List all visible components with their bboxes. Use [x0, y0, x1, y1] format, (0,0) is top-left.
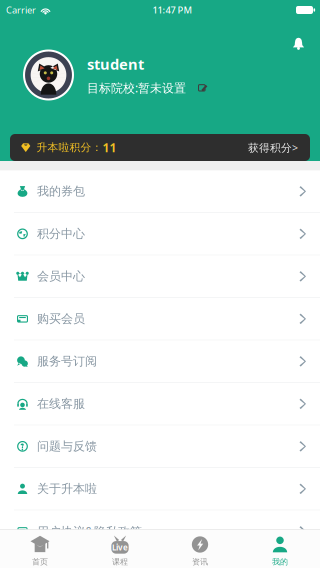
- button[interactable]: 我的: [240, 530, 320, 568]
- staticText: 升本啦积分：: [36, 141, 102, 154]
- button[interactable]: 头像: [23, 49, 74, 100]
- staticText: Live: [112, 542, 128, 553]
- staticText: Carrier: [6, 4, 36, 16]
- button[interactable]: Live: [80, 530, 160, 568]
- staticText: 11: [102, 139, 116, 155]
- button[interactable]: 关于升本啦: [0, 468, 320, 511]
- button[interactable]: 编辑目标院校: [186, 81, 207, 94]
- button[interactable]: 我的券包: [0, 171, 320, 213]
- button[interactable]: 首页: [0, 530, 80, 568]
- button[interactable]: 购买会员: [0, 298, 320, 341]
- staticText: student: [87, 54, 144, 74]
- staticText: 积分中心: [37, 226, 85, 241]
- staticText: 11:47 PM: [152, 4, 192, 16]
- staticText: 在线客服: [37, 396, 85, 411]
- staticText: 资讯: [192, 557, 208, 567]
- button[interactable]: 资讯: [160, 530, 240, 568]
- staticText: 购买会员: [37, 311, 85, 326]
- staticText: 首页: [32, 557, 48, 567]
- staticText: 我的券包: [37, 184, 85, 199]
- staticText: 课程: [112, 557, 128, 567]
- button[interactable]: 用户协议&隐私政策: [0, 511, 320, 553]
- staticText: 问题与反馈: [37, 439, 97, 454]
- staticText: 我的: [272, 557, 288, 567]
- staticText: 关于升本啦: [37, 481, 97, 496]
- button[interactable]: 积分中心: [0, 213, 320, 256]
- button[interactable]: 服务号订阅: [0, 341, 320, 383]
- staticText: 获得积分>: [248, 140, 298, 155]
- button[interactable]: 升本啦积分：: [0, 134, 320, 161]
- button[interactable]: 在线客服: [0, 383, 320, 426]
- staticText: 服务号订阅: [37, 354, 97, 369]
- button[interactable]: 会员中心: [0, 256, 320, 298]
- button[interactable]: 问题与反馈: [0, 426, 320, 468]
- staticText: 会员中心: [37, 269, 85, 284]
- staticText: 目标院校:暂未设置: [87, 80, 186, 96]
- button[interactable]: 通知: [286, 31, 311, 56]
- staticText: 用户协议&隐私政策: [37, 523, 142, 539]
